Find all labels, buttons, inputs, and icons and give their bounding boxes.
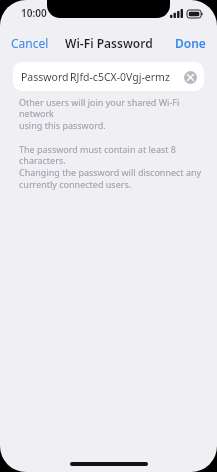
button[interactable]: Cancel [0, 30, 60, 56]
staticText: RJfd-c5CX-0Vgj-ermz [70, 70, 170, 84]
staticText: The password must contain at least 8 cha… [19, 143, 205, 191]
staticText: Other users will join your shared Wi-Fi … [19, 96, 203, 132]
button[interactable]: Clear text [182, 69, 198, 85]
staticText: Done [175, 35, 206, 51]
staticText: 10:00 [21, 6, 47, 20]
staticText: Password [21, 70, 69, 84]
staticText: Cancel [11, 35, 49, 51]
button[interactable]: Done [164, 30, 217, 56]
staticText: Wi-Fi Password [65, 35, 153, 51]
button[interactable]: Password [13, 62, 204, 91]
